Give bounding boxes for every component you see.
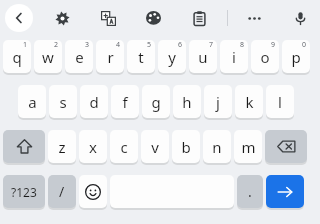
button[interactable]: x <box>79 130 107 163</box>
staticText: l <box>278 92 282 112</box>
staticText: 9 <box>271 40 276 50</box>
staticText: i <box>232 47 236 67</box>
staticText: 2 <box>54 40 59 50</box>
button[interactable]: p <box>282 40 310 73</box>
staticText: j <box>216 92 220 112</box>
button[interactable]: Theme <box>140 5 166 31</box>
staticText: m <box>241 137 256 157</box>
staticText: 1 <box>23 40 28 50</box>
staticText: q <box>12 47 22 67</box>
staticText: b <box>181 137 191 157</box>
staticText: 6 <box>178 40 183 50</box>
button[interactable]: o <box>251 40 279 73</box>
button[interactable]: Translate <box>95 5 121 31</box>
button[interactable]: j <box>204 85 232 118</box>
button[interactable]: ?123 <box>3 175 45 208</box>
staticText: / <box>59 182 65 201</box>
staticText: 4 <box>116 40 121 50</box>
staticText: 0 <box>302 40 307 50</box>
button[interactable]: d <box>80 85 108 118</box>
staticText: . <box>248 182 252 201</box>
button[interactable]: c <box>110 130 138 163</box>
button[interactable]: Shift <box>3 130 45 163</box>
staticText: 3 <box>85 40 90 50</box>
staticText: n <box>212 137 222 157</box>
button[interactable]: Voice input <box>287 5 313 31</box>
staticText: h <box>182 92 192 112</box>
button[interactable]: / <box>48 175 76 208</box>
staticText: d <box>89 92 99 112</box>
button[interactable]: t <box>127 40 155 73</box>
staticText: x <box>89 137 97 157</box>
staticText: 5 <box>147 40 152 50</box>
button[interactable]: More options <box>241 5 267 31</box>
staticText: v <box>151 137 159 157</box>
button[interactable]: Backspace <box>265 130 307 163</box>
staticText: f <box>122 92 128 112</box>
button[interactable]: q <box>3 40 31 73</box>
button[interactable]: . <box>237 175 263 208</box>
staticText: c <box>120 137 128 157</box>
staticText: 8 <box>240 40 245 50</box>
button[interactable]: Enter <box>266 175 304 208</box>
button[interactable]: b <box>172 130 200 163</box>
button[interactable]: f <box>111 85 139 118</box>
button[interactable]: Clipboard <box>186 5 212 31</box>
button[interactable]: u <box>189 40 217 73</box>
button[interactable]: z <box>48 130 76 163</box>
staticText: e <box>75 47 84 67</box>
staticText: k <box>245 92 254 112</box>
button[interactable]: r <box>96 40 124 73</box>
button[interactable]: Emoji <box>79 175 107 208</box>
button[interactable]: Back <box>5 4 33 32</box>
staticText: o <box>260 47 270 67</box>
staticText: ?123 <box>11 184 37 200</box>
button[interactable]: n <box>203 130 231 163</box>
staticText: p <box>291 47 301 67</box>
button[interactable]: y <box>158 40 186 73</box>
staticText: w <box>42 47 54 67</box>
staticText: z <box>58 137 66 157</box>
button[interactable]: v <box>141 130 169 163</box>
button[interactable]: w <box>34 40 62 73</box>
button[interactable]: s <box>49 85 77 118</box>
staticText: u <box>198 47 208 67</box>
button[interactable]: i <box>220 40 248 73</box>
staticText: g <box>151 92 161 112</box>
button[interactable]: Settings <box>49 5 75 31</box>
button[interactable]: a <box>18 85 46 118</box>
button[interactable]: h <box>173 85 201 118</box>
staticText: r <box>107 47 114 67</box>
button[interactable]: m <box>234 130 262 163</box>
staticText: y <box>168 47 176 67</box>
staticText: t <box>138 47 144 67</box>
staticText: 7 <box>209 40 214 50</box>
button[interactable]: e <box>65 40 93 73</box>
button[interactable]: g <box>142 85 170 118</box>
button[interactable]: l <box>266 85 294 118</box>
staticText: s <box>59 92 67 112</box>
button[interactable]: k <box>235 85 263 118</box>
staticText: a <box>28 92 37 112</box>
